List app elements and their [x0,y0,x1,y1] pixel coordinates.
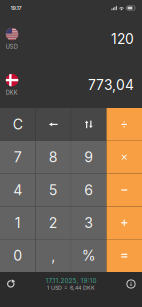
button[interactable]: 0 [0,239,35,272]
staticText: 7 [14,149,22,166]
button[interactable]: Add [106,206,142,239]
staticText: 3 [84,214,93,231]
staticText: 6 [84,181,93,198]
button[interactable]: Backspace [35,108,71,141]
button[interactable]: % [71,239,106,272]
staticText: 8 [49,149,58,166]
staticText: 17.11.2025, 19:10 [45,277,96,285]
button[interactable]: 3 [71,206,106,239]
staticText: 5 [49,181,58,198]
button[interactable]: Equals [106,239,142,272]
staticText: 2 [49,214,58,231]
staticText: 1 USD = 6,44 DKK [47,285,95,291]
button[interactable]: Refresh rates [0,272,22,296]
staticText: , [51,247,55,264]
button[interactable]: Divide [106,108,142,141]
staticText: 0 [13,247,22,264]
button[interactable]: 1 [0,206,35,239]
staticText: 773,04 [88,77,134,93]
button[interactable]: DKK [0,62,142,108]
staticText: 4 [13,181,22,198]
button[interactable]: C [0,108,35,141]
button[interactable]: , [35,239,71,272]
staticText: % [82,247,96,264]
staticText: 9 [84,149,93,166]
button[interactable]: 8 [35,141,71,174]
staticText: 19.17 [10,5,21,11]
button[interactable]: Info [120,272,142,296]
staticText: C [13,116,23,133]
button[interactable]: Swap currencies [71,108,106,141]
staticText: 1 [15,214,21,231]
button[interactable]: Multiply [106,141,142,174]
staticText: DKK [6,89,18,96]
button[interactable]: 9 [71,141,106,174]
button[interactable]: USD [0,16,142,62]
button[interactable]: 4 [0,174,35,206]
button[interactable]: Subtract [106,174,142,206]
button[interactable]: 6 [71,174,106,206]
button[interactable]: 5 [35,174,71,206]
staticText: 120 [111,31,134,47]
button[interactable]: 7 [0,141,35,174]
button[interactable]: 2 [35,206,71,239]
staticText: USD [6,43,18,50]
